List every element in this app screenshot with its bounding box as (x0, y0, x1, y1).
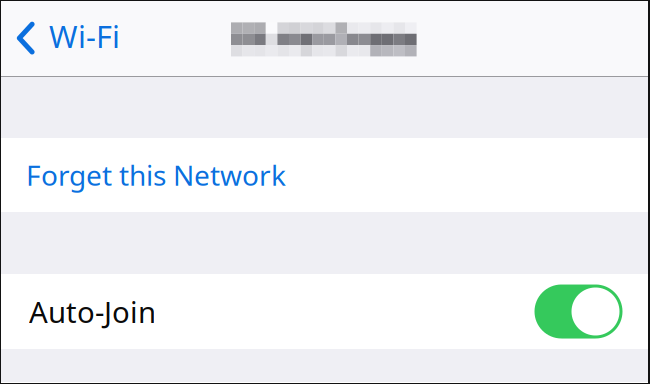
button[interactable]: Back to Wi-Fi (0, 0, 132, 77)
button[interactable]: Auto-Join, on (534, 284, 622, 338)
staticText: Forget this Network (26, 156, 286, 194)
staticText: Wi-Fi (49, 16, 120, 56)
staticText: Auto-Join (29, 292, 156, 331)
button[interactable]: Forget this Network (0, 138, 650, 212)
